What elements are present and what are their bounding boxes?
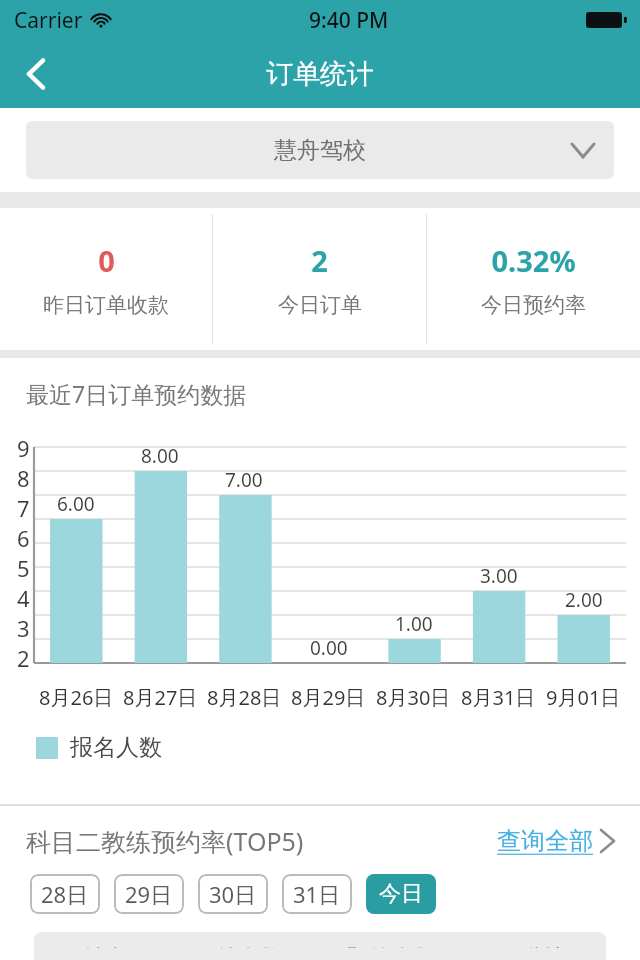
staticText: 2 <box>17 643 30 673</box>
staticText: 8月26日 <box>39 684 114 711</box>
button[interactable]: 30日 <box>198 874 268 914</box>
staticText: 查询全部 <box>497 826 593 856</box>
staticText: 8月30日 <box>376 684 451 711</box>
staticText: 7 <box>17 493 30 523</box>
staticText: 最近7日订单预约数据 <box>26 378 247 409</box>
staticText: 0.00 <box>310 635 348 661</box>
staticText: 31日 <box>293 879 341 909</box>
staticText: 29日 <box>125 879 173 909</box>
button[interactable]: 0 <box>0 208 212 350</box>
button[interactable]: Back <box>8 46 64 102</box>
button[interactable]: 28日 <box>30 874 100 914</box>
staticText: 8月27日 <box>123 684 198 711</box>
staticText: 5 <box>17 553 30 583</box>
button[interactable]: 31日 <box>282 874 352 914</box>
staticText: 百分比 <box>463 944 606 948</box>
staticText: 昨日订单收款 <box>43 292 169 318</box>
staticText: 2.00 <box>565 587 603 613</box>
staticText: 9 <box>17 433 30 463</box>
staticText: 7.00 <box>225 467 263 493</box>
button[interactable]: 0.32% <box>427 208 640 350</box>
staticText: 9:40 PM <box>309 6 389 35</box>
staticText: 预约人数 <box>320 944 463 948</box>
staticText: 8 <box>17 463 30 493</box>
staticText: 2 <box>311 241 328 280</box>
button[interactable]: 29日 <box>114 874 184 914</box>
staticText: 3 <box>17 613 30 643</box>
staticText: 1.00 <box>395 611 433 637</box>
staticText: 姓名 <box>34 944 177 948</box>
staticText: Carrier <box>14 6 83 35</box>
button[interactable]: 慧舟驾校 <box>26 121 614 179</box>
staticText: 订单统计 <box>266 57 374 91</box>
staticText: 0 <box>98 241 115 280</box>
staticText: 0.32% <box>491 241 576 280</box>
staticText: 今日订单 <box>278 292 362 318</box>
staticText: 9月01日 <box>546 684 621 711</box>
staticText: 6 <box>17 523 30 553</box>
staticText: 28日 <box>41 879 89 909</box>
staticText: 4 <box>17 583 30 613</box>
button[interactable]: 今日 <box>366 874 436 914</box>
staticText: 8月31日 <box>461 684 536 711</box>
staticText: 8.00 <box>141 443 179 469</box>
button[interactable]: 查询全部 <box>497 826 614 856</box>
staticText: 3.00 <box>480 563 518 589</box>
staticText: 30日 <box>209 879 257 909</box>
button[interactable]: 2 <box>213 208 426 350</box>
staticText: 慧舟驾校 <box>274 136 366 165</box>
staticText: 今日预约率 <box>481 292 586 318</box>
staticText: 8月29日 <box>291 684 366 711</box>
staticText: 总人数 <box>177 944 320 948</box>
staticText: 6.00 <box>57 491 95 517</box>
staticText: 科目二教练预约率(TOP5) <box>26 824 304 858</box>
staticText: 今日 <box>379 880 423 908</box>
staticText: 报名人数 <box>70 733 162 762</box>
staticText: 8月28日 <box>207 684 282 711</box>
